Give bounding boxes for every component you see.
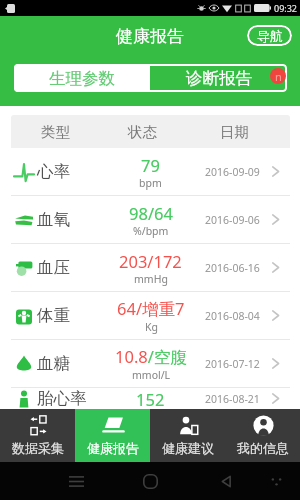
staticText: 2016-09-06 (205, 213, 260, 227)
button[interactable]: 诊断报告 (150, 64, 287, 92)
staticText: 2016-07-12 (205, 357, 260, 371)
staticText: 10.8/空腹 (115, 345, 187, 368)
staticText: 生理参数 (49, 68, 115, 89)
staticText: 2016-06-16 (205, 261, 260, 275)
staticText: 2016-09-09 (205, 165, 260, 179)
button[interactable]: 血压 (11, 244, 290, 292)
staticText: %/bpm (133, 224, 169, 238)
staticText: 2016-08-04 (205, 309, 260, 323)
staticText: 64/增重7 (117, 297, 185, 320)
staticText: 类型 (41, 123, 70, 141)
button[interactable]: 血糖 (11, 340, 290, 388)
button[interactable]: Home (142, 473, 158, 489)
staticText: 血糖 (37, 353, 70, 374)
button[interactable]: 心率 (11, 148, 290, 196)
button[interactable]: Back (218, 473, 234, 489)
button[interactable]: 体重 (11, 292, 290, 340)
staticText: mmol/L (132, 368, 171, 382)
staticText: 导航 (257, 28, 283, 44)
button[interactable]: 数据采集 (0, 409, 75, 462)
staticText: 2016-08-21 (205, 392, 260, 406)
button[interactable]: Menu (68, 473, 84, 489)
staticText: 血压 (37, 257, 70, 278)
staticText: 09:32 (274, 2, 298, 14)
staticText: 数据采集 (12, 440, 64, 456)
staticText: mmHg (134, 272, 168, 286)
button[interactable]: More (268, 473, 284, 489)
staticText: 我的信息 (237, 440, 289, 456)
staticText: 152 (136, 388, 165, 409)
staticText: 健康报告 (116, 26, 184, 47)
button[interactable]: 生理参数 (14, 64, 150, 92)
button[interactable]: 血氧 (11, 196, 290, 244)
button[interactable]: 健康建议 (150, 409, 225, 462)
staticText: 状态 (128, 123, 157, 141)
staticText: 诊断报告 (186, 68, 252, 89)
staticText: 心率 (37, 161, 70, 182)
staticText: 203/172 (119, 250, 182, 272)
button[interactable]: 我的信息 (225, 409, 300, 462)
staticText: 79 (141, 154, 160, 176)
button[interactable]: 导航 (247, 25, 292, 46)
staticText: 日期 (220, 123, 249, 141)
button[interactable]: 新提醒 (270, 68, 286, 84)
staticText: 健康报告 (87, 440, 139, 456)
staticText: 胎心率 (37, 388, 87, 409)
button[interactable]: 健康报告 (75, 409, 150, 462)
button[interactable]: 胎心率 (11, 388, 290, 409)
staticText: bpm (139, 176, 162, 190)
staticText: Kg (145, 320, 158, 334)
staticText: 98/64 (129, 202, 173, 224)
staticText: n (275, 69, 282, 84)
staticText: 血氧 (37, 209, 70, 230)
staticText: 体重 (37, 305, 70, 326)
staticText: 健康建议 (162, 440, 214, 456)
